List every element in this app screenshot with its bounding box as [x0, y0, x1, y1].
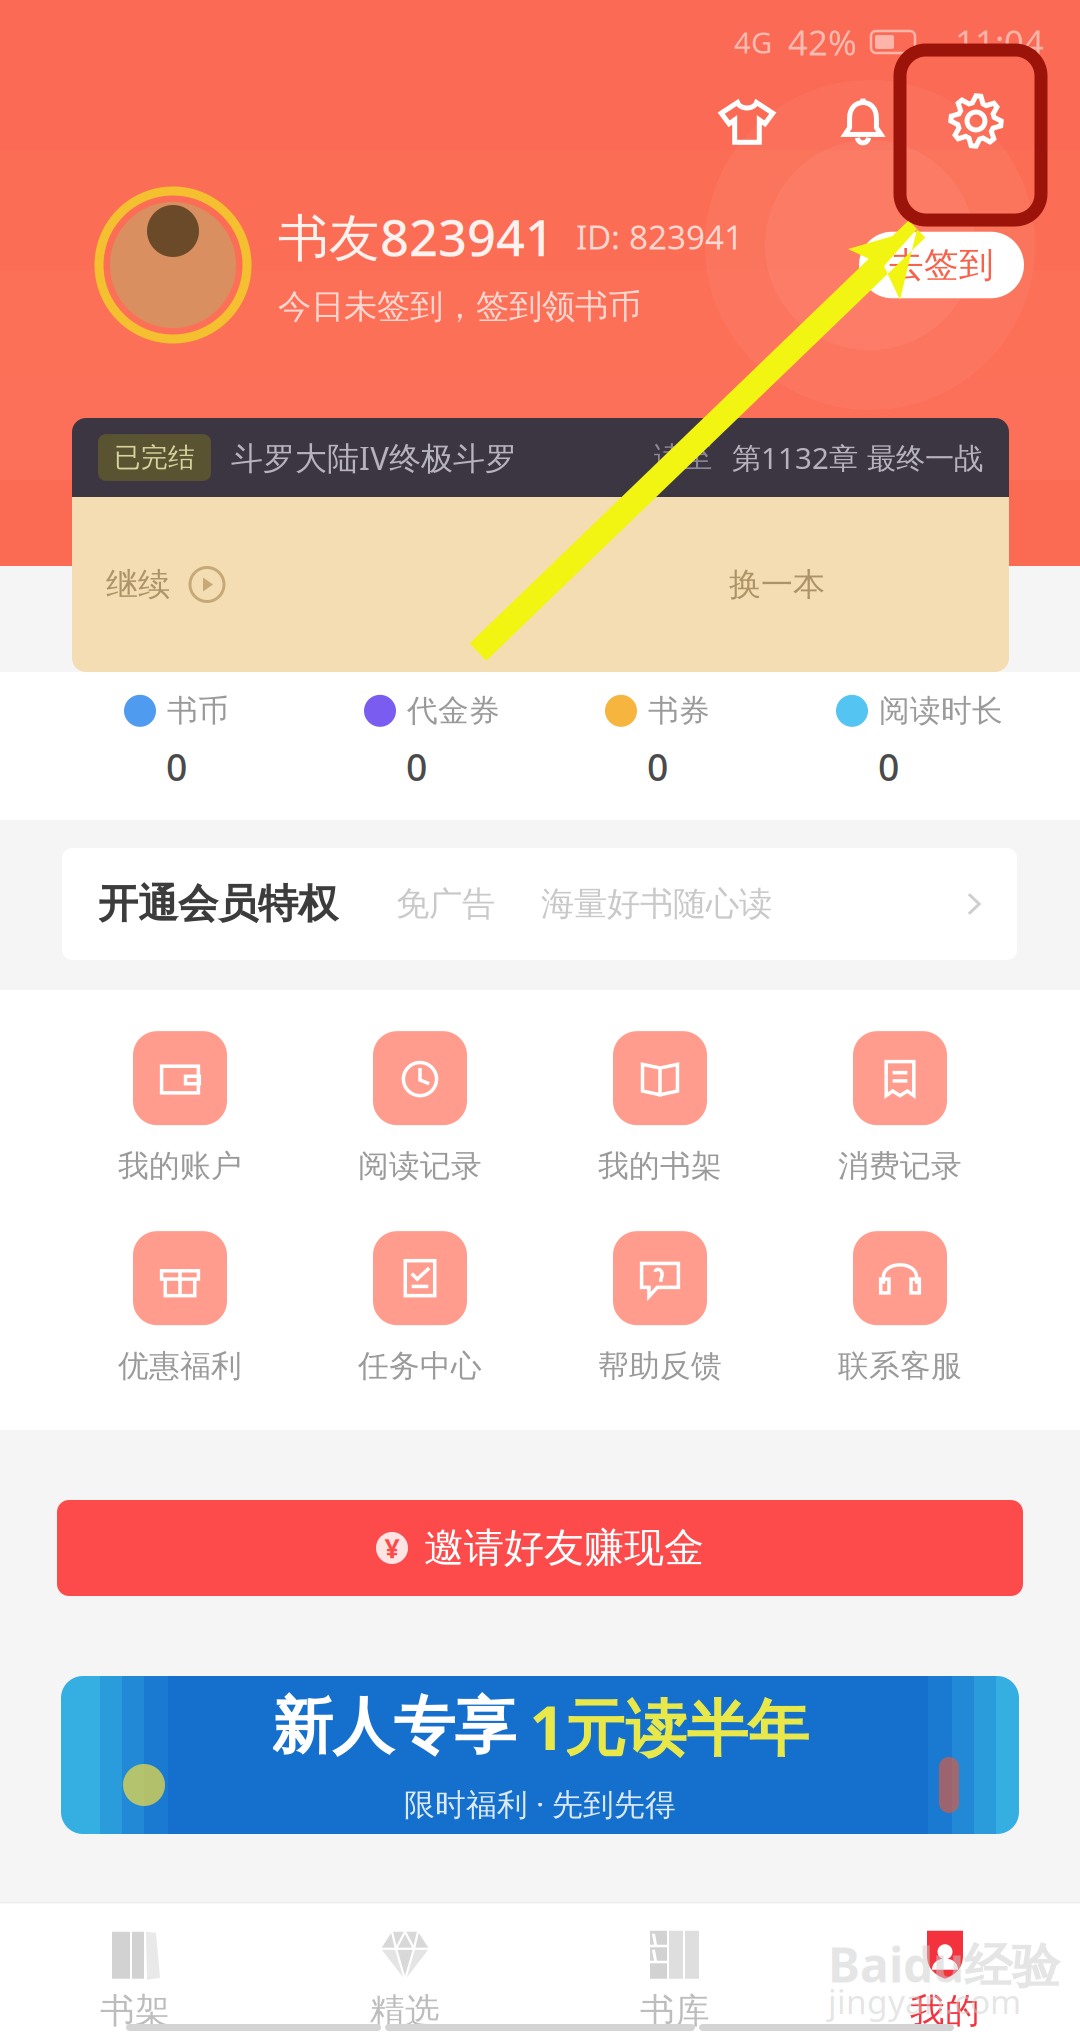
button[interactable]: Dress up	[704, 78, 790, 164]
staticText: 继续	[106, 565, 170, 604]
staticText: 书架	[100, 1990, 170, 2032]
staticText: 0	[406, 742, 427, 791]
staticText: 我的账户	[118, 1147, 242, 1185]
staticText: 0	[166, 742, 187, 791]
staticText: 第1132章 最终一战	[732, 438, 983, 477]
staticText: 阅读时长	[879, 692, 1003, 730]
staticText: 代金券	[407, 692, 500, 730]
button[interactable]: 任务中心	[300, 1233, 540, 1383]
staticText: 免广告	[396, 883, 495, 924]
button[interactable]: 联系客服	[780, 1233, 1020, 1383]
button[interactable]: 帮助反馈	[540, 1233, 780, 1383]
staticText: Baidu经验	[828, 1932, 1060, 1996]
staticText: 书友823941	[278, 203, 554, 270]
button[interactable]: 消费记录	[780, 1033, 1020, 1183]
staticText: 书库	[640, 1990, 710, 2032]
staticText: 去签到	[889, 244, 994, 286]
staticText: 读至	[654, 439, 712, 475]
staticText: 邀请好友赚现金	[424, 1523, 704, 1572]
staticText: ¥	[384, 1530, 399, 1566]
staticText: 开通会员特权	[98, 879, 338, 928]
staticText: 我的	[910, 1990, 980, 2032]
staticText: 1元读半年	[529, 1686, 808, 1767]
button[interactable]: 我的账户	[60, 1033, 300, 1183]
button[interactable]: Settings	[933, 78, 1019, 164]
staticText: 联系客服	[838, 1347, 962, 1385]
staticText: 斗罗大陆IV终极斗罗	[231, 436, 517, 479]
staticText: 42%	[788, 19, 857, 65]
button[interactable]: 我的	[810, 1904, 1080, 2040]
staticText: 今日未签到，签到领书币	[278, 286, 641, 327]
button[interactable]: 阅读记录	[300, 1033, 540, 1183]
staticText: 11:04	[955, 19, 1044, 65]
button[interactable]: 已完结	[72, 418, 1009, 672]
button[interactable]: 开通会员特权	[62, 848, 1017, 960]
button[interactable]: 阅读时长	[836, 692, 1026, 796]
button[interactable]: ¥	[57, 1500, 1023, 1596]
button[interactable]: 书券	[605, 692, 795, 796]
button[interactable]: 书架	[0, 1904, 270, 2040]
button[interactable]: 去签到	[859, 232, 1024, 298]
staticText: 4G	[734, 22, 772, 61]
button[interactable]: 精选	[270, 1904, 540, 2040]
staticText: 优惠福利	[118, 1347, 242, 1385]
button[interactable]: 书库	[540, 1904, 810, 2040]
staticText: 0	[878, 742, 899, 791]
staticText: 书币	[167, 692, 229, 730]
staticText: 阅读记录	[358, 1147, 482, 1185]
staticText: 书券	[648, 692, 710, 730]
button[interactable]: 书币	[124, 692, 314, 796]
staticText: 精选	[370, 1990, 440, 2032]
staticText: 新人专享	[271, 1689, 515, 1764]
staticText: 换一本	[729, 565, 825, 604]
staticText: jingyan.com	[828, 1979, 1021, 2023]
staticText: 已完结	[114, 441, 195, 474]
button[interactable]: 新人专享	[61, 1676, 1019, 1834]
button[interactable]: 代金券	[364, 692, 554, 796]
button[interactable]: 我的书架	[540, 1033, 780, 1183]
staticText: 帮助反馈	[598, 1347, 722, 1385]
staticText: 消费记录	[838, 1147, 962, 1185]
staticText: 任务中心	[358, 1347, 482, 1385]
staticText: 海量好书随心读	[541, 883, 772, 924]
button[interactable]: Profile photo	[98, 190, 248, 340]
staticText: 我的书架	[598, 1147, 722, 1185]
button[interactable]: Notifications	[820, 78, 906, 164]
staticText: 0	[647, 742, 668, 791]
staticText: ID: 823941	[576, 214, 743, 259]
staticText: 限时福利 · 先到先得	[404, 1783, 676, 1824]
button[interactable]: 优惠福利	[60, 1233, 300, 1383]
